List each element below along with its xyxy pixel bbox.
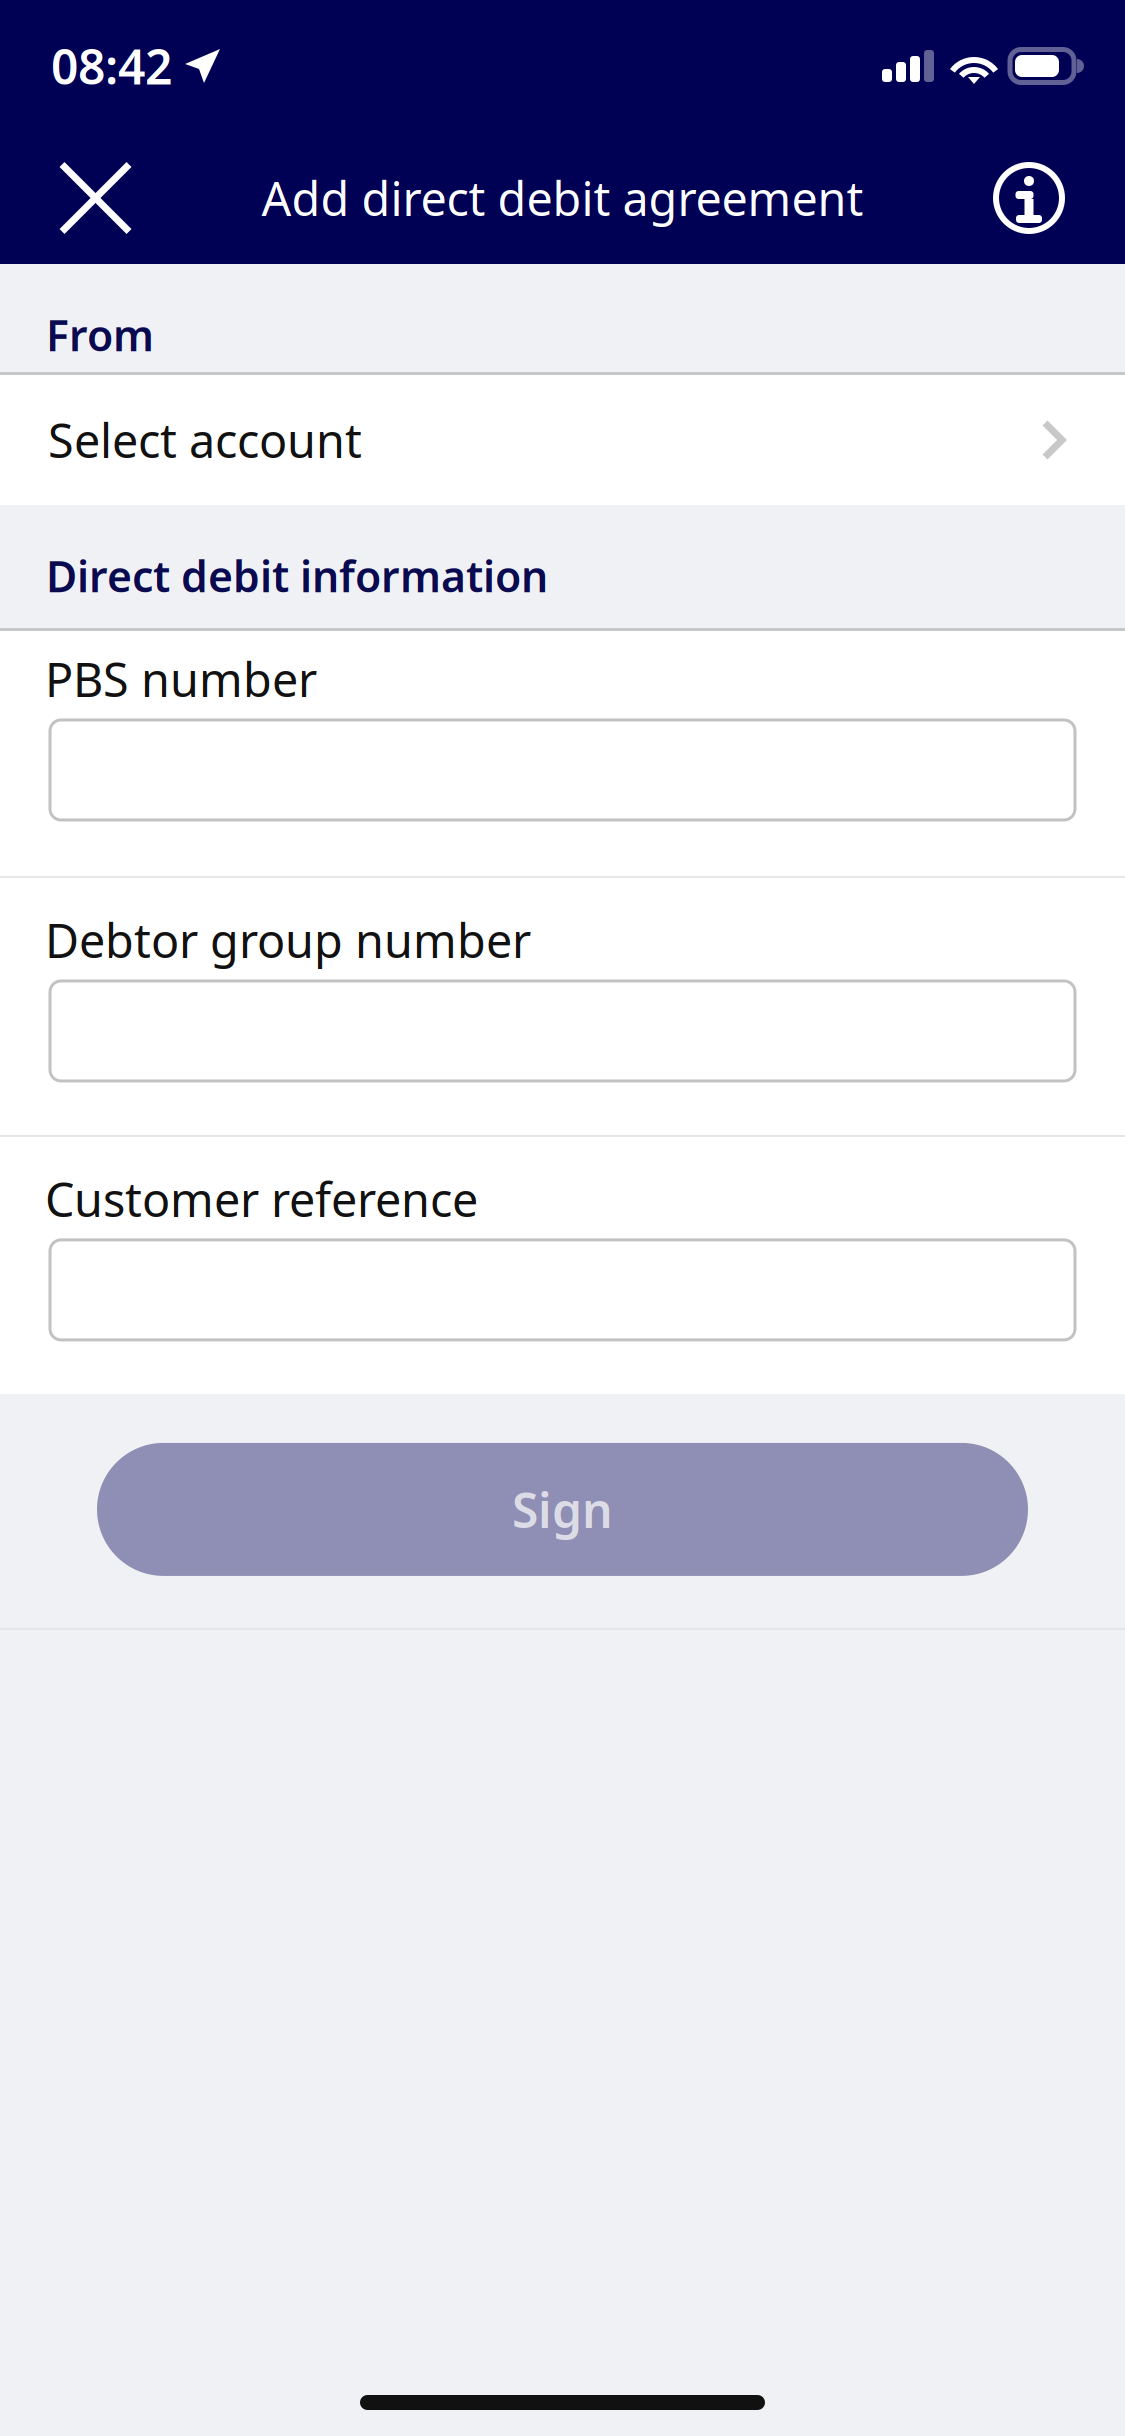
staticText: Customer reference — [45, 1168, 478, 1230]
staticText: PBS number — [45, 648, 317, 710]
staticText: Add direct debit agreement — [261, 167, 863, 229]
button[interactable]: Information — [963, 132, 1125, 264]
staticText: Select account — [48, 409, 362, 471]
staticText: Direct debit information — [46, 547, 548, 604]
staticText: 08:42 — [51, 34, 172, 98]
staticText: Sign — [512, 1477, 613, 1541]
button[interactable]: Select account — [0, 375, 1125, 505]
staticText: Debtor group number — [45, 909, 531, 971]
staticText: From — [46, 306, 154, 363]
button[interactable]: Close — [0, 132, 162, 264]
button[interactable]: Sign — [0, 1394, 1125, 1628]
